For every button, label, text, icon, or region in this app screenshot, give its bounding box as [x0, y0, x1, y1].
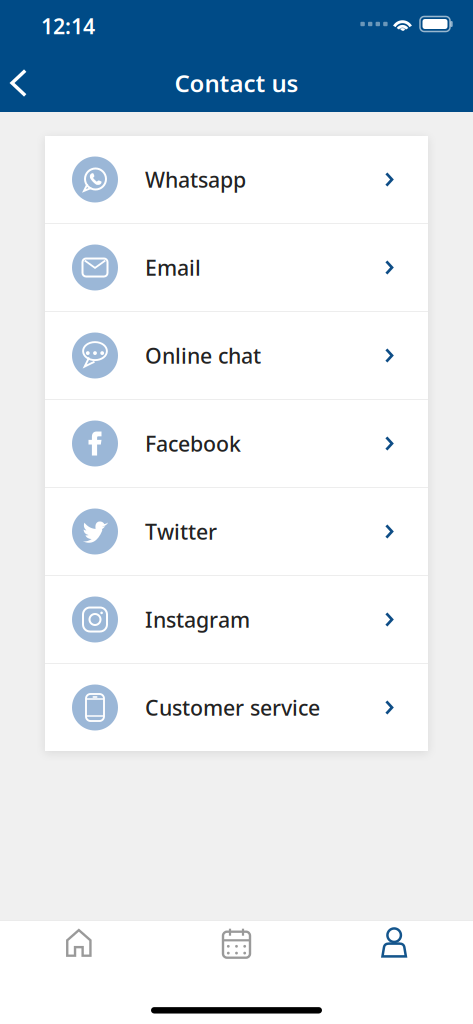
staticText: Customer service — [145, 693, 320, 722]
button[interactable]: Profile — [315, 928, 473, 958]
button[interactable]: Instagram — [45, 576, 428, 663]
button[interactable]: Facebook — [45, 400, 428, 487]
button[interactable]: Home — [0, 928, 158, 958]
button[interactable]: Email — [45, 224, 428, 311]
button[interactable]: Back — [0, 53, 43, 107]
staticText: 12:14 — [41, 12, 95, 40]
staticText: Twitter — [145, 517, 217, 546]
staticText: Facebook — [145, 429, 241, 458]
button[interactable]: Customer service — [45, 664, 428, 751]
button[interactable]: Online chat — [45, 312, 428, 399]
button[interactable]: Twitter — [45, 488, 428, 575]
staticText: Email — [145, 253, 201, 282]
staticText: Whatsapp — [145, 165, 246, 194]
button[interactable]: Calendar — [158, 928, 315, 958]
staticText: Instagram — [145, 605, 250, 634]
button[interactable]: Whatsapp — [45, 136, 428, 223]
staticText: Online chat — [145, 341, 261, 370]
staticText: Contact us — [174, 67, 298, 99]
